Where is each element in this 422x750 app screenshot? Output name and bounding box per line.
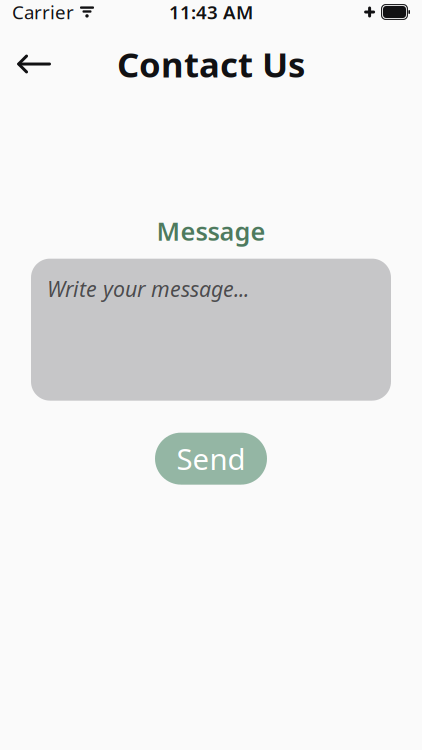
- staticText: Write your message...: [47, 275, 249, 303]
- staticText: Message: [156, 214, 265, 248]
- button[interactable]: Write your message...: [31, 259, 391, 401]
- button[interactable]: Back: [8, 42, 60, 86]
- staticText: Contact Us: [117, 41, 305, 87]
- staticText: Carrier: [12, 0, 74, 24]
- button[interactable]: Send: [155, 433, 267, 485]
- staticText: Send: [176, 439, 245, 478]
- staticText: 11:43 AM: [169, 0, 253, 24]
